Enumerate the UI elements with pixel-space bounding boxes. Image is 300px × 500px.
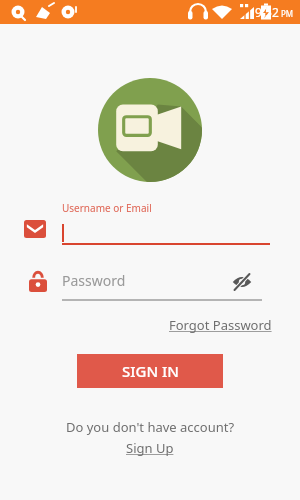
button[interactable]: Sign Up xyxy=(126,439,174,457)
other: Password xyxy=(29,270,47,292)
staticText: Sign Up xyxy=(126,439,174,457)
button[interactable]: SIGN IN xyxy=(77,354,223,388)
button[interactable]: Email xyxy=(0,198,300,250)
staticText: Username or Email xyxy=(62,201,152,215)
staticText: Do you don't have account? xyxy=(66,418,235,436)
staticText: Forgot Password xyxy=(169,316,272,334)
button[interactable]: Password xyxy=(0,264,300,304)
other: Show password xyxy=(231,274,253,290)
staticText: PM xyxy=(281,8,294,19)
button[interactable]: Forgot Password xyxy=(169,316,272,334)
other: Email xyxy=(24,220,46,238)
staticText: Password xyxy=(62,271,126,290)
staticText: SIGN IN xyxy=(122,361,179,381)
staticText: 9:52 xyxy=(255,4,279,20)
